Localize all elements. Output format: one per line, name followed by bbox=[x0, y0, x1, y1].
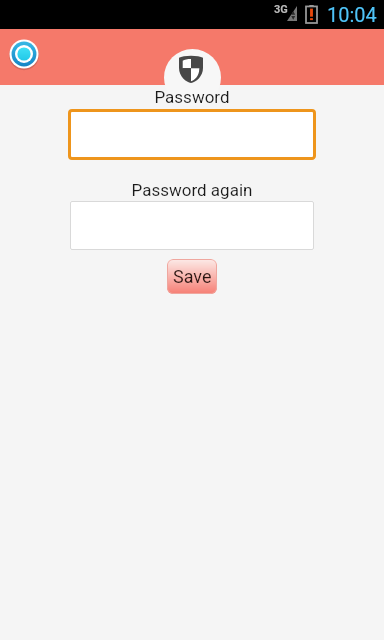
staticText: 3G bbox=[274, 3, 288, 16]
staticText: Password again bbox=[0, 180, 384, 200]
staticText: Save bbox=[173, 266, 212, 287]
button[interactable]: Password again entry field bbox=[70, 201, 314, 250]
button[interactable]: Password entry field bbox=[68, 109, 316, 160]
staticText: Password bbox=[0, 87, 384, 107]
button[interactable]: Save bbox=[167, 259, 217, 294]
other: App logo bbox=[9, 39, 39, 69]
staticText: 10:04 bbox=[327, 3, 377, 26]
